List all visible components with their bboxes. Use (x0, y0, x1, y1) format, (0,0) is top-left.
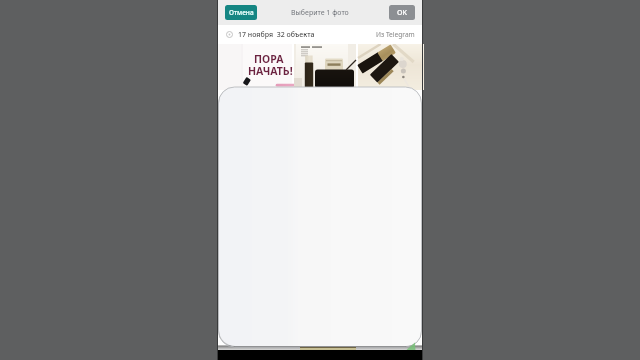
other: Select day (226, 31, 233, 38)
staticText: 17 ноября 32 объекта (238, 30, 315, 40)
button[interactable]: Select day (217, 25, 423, 44)
staticText: НАЧАТЬ! (248, 64, 293, 78)
button[interactable] (294, 44, 356, 90)
button[interactable]: Отмена (225, 5, 257, 20)
button[interactable]: ПОРА (218, 44, 292, 90)
button[interactable]: OK (389, 5, 415, 20)
staticText: Выберите 1 фото (291, 8, 349, 18)
staticText: OK (397, 8, 407, 18)
button[interactable] (358, 44, 424, 90)
staticText: Отмена (229, 8, 254, 17)
staticText: ПОРА (254, 52, 284, 66)
staticText: Из Telegram (376, 30, 415, 39)
